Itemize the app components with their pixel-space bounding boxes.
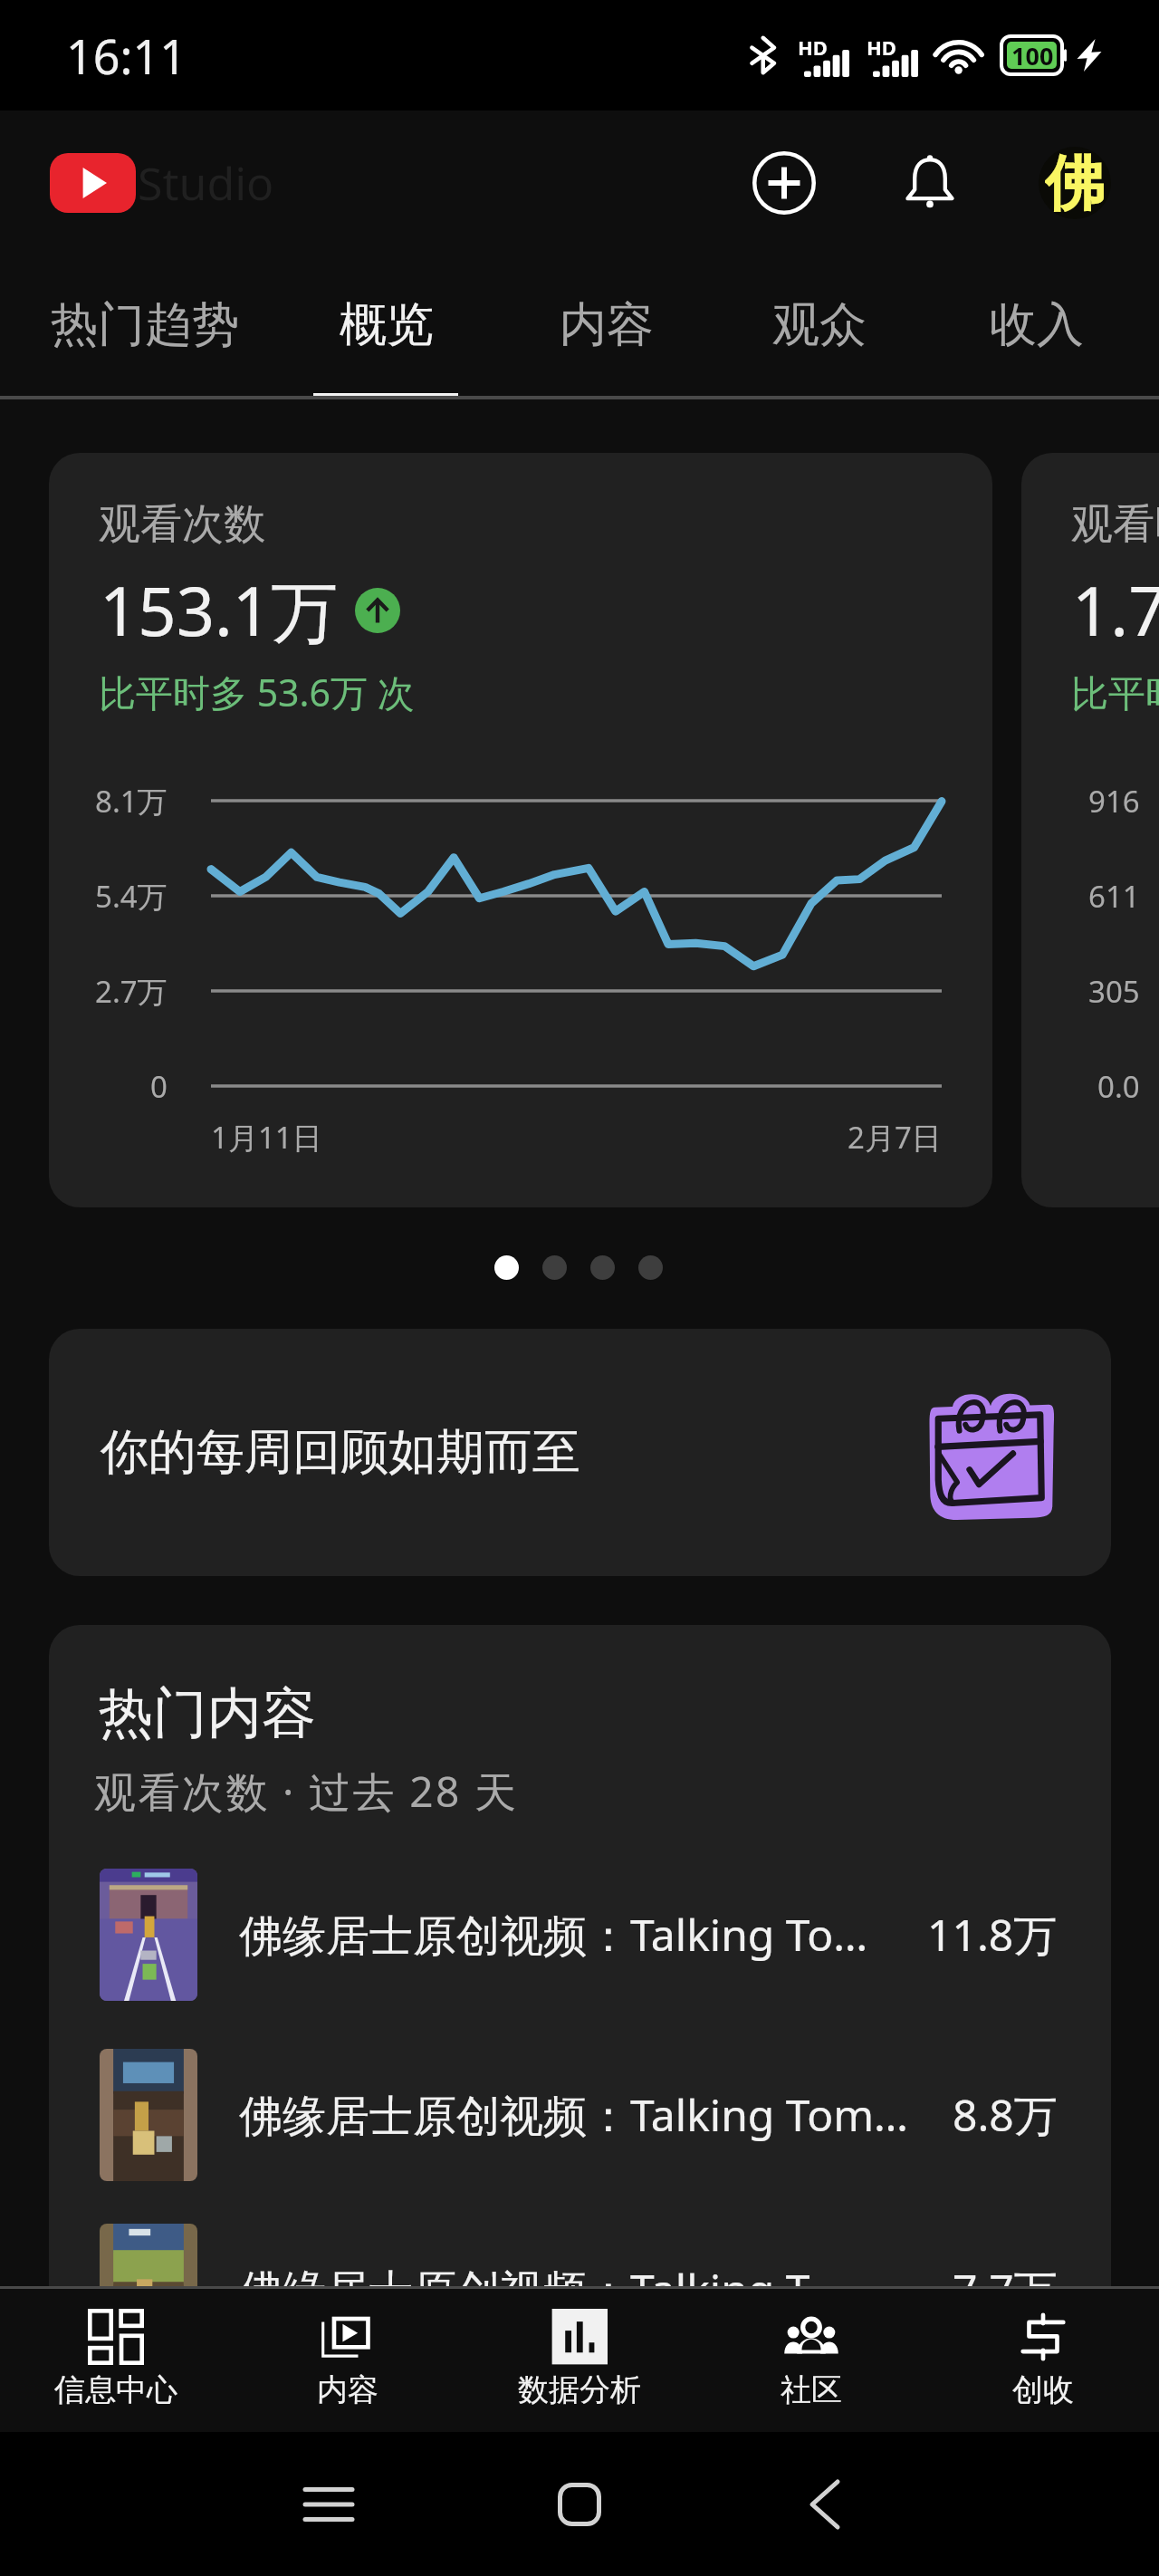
button[interactable]: 内容 [232,2289,464,2432]
staticText: 305 [1088,971,1140,1012]
staticText: 热门趋势 [51,295,239,355]
staticText: 8.8万 [953,2085,1058,2145]
staticText: 概览 [340,295,434,355]
staticText: 你的每周回顾如期而至 [101,1422,580,1483]
staticText: 611 [1088,876,1140,917]
button[interactable]: Create [734,133,834,233]
button[interactable]: 佛缘居士原创视频：Talking To… [49,1859,1111,2011]
staticText: Studio [138,152,274,214]
button[interactable]: 佛缘居士原创视频：Talking Tom… [49,2039,1111,2191]
button[interactable]: 社区 [695,2289,927,2432]
button[interactable]: 创收 [927,2289,1159,2432]
staticText: 比平时多 6000 小时 [1071,667,1159,717]
staticText: 1月11日 [211,1117,322,1158]
staticText: 观看次数 · 过去 28 天 [94,1763,519,1820]
staticText: 153.1万 [100,564,339,656]
staticText: 7.7万 [953,2260,1058,2320]
staticText: 2.7万 [95,971,168,1012]
button[interactable]: Studio [50,152,274,214]
button[interactable]: 概览 [316,259,457,399]
staticText: 2月7日 [848,1117,942,1158]
button[interactable]: 内容 [536,259,677,399]
button[interactable]: Notifications [880,133,980,233]
staticText: 内容 [317,2370,378,2409]
staticText: 创收 [1012,2370,1074,2409]
staticText: 佛缘居士原创视频：Talking Tom… [239,2085,938,2145]
button[interactable]: 观看次数 [49,453,992,1207]
staticText: 8.1万 [95,781,168,822]
button[interactable]: 佛缘居士原创视频：Talking T… [49,2214,1111,2366]
button[interactable]: 观众 [749,259,890,399]
button[interactable]: 收入 [966,259,1107,399]
button[interactable]: Recents [274,2432,383,2576]
staticText: 观看次数 [99,498,265,551]
staticText: 观众 [772,295,867,355]
button[interactable]: 信息中心 [0,2289,232,2432]
staticText: 佛缘居士原创视频：Talking To… [239,1905,913,1965]
staticText: 热门内容 [99,1679,316,1748]
button[interactable]: 热门趋势 [24,259,266,399]
staticText: 比平时多 53.6万 次 [99,667,415,717]
staticText: 16:11 [66,24,187,88]
staticText: 916 [1088,781,1140,822]
staticText: 100 [1011,39,1054,72]
button[interactable]: 你的每周回顾如期而至 [49,1329,1111,1576]
staticText: 数据分析 [518,2370,641,2409]
staticText: HD [798,34,828,61]
button[interactable]: Home [525,2432,634,2576]
button[interactable]: Back [771,2432,879,2576]
staticText: 观看时长（小时） [1071,498,1159,551]
staticText: 信息中心 [54,2370,177,2409]
staticText: 佛 [1045,147,1105,218]
staticText: 内容 [560,295,654,355]
staticText: 收入 [990,295,1084,355]
staticText: HD [867,34,896,61]
button[interactable]: Account [1039,147,1111,219]
staticText: 0 [150,1066,168,1107]
staticText: 佛缘居士原创视频：Talking T… [239,2260,938,2320]
staticText: 11.8万 [927,1905,1058,1965]
staticText: 社区 [781,2370,842,2409]
button[interactable]: 数据分析 [464,2289,695,2432]
staticText: 5.4万 [95,876,168,917]
staticText: 1.7万 [1072,564,1159,656]
staticText: 0.0 [1097,1066,1140,1107]
